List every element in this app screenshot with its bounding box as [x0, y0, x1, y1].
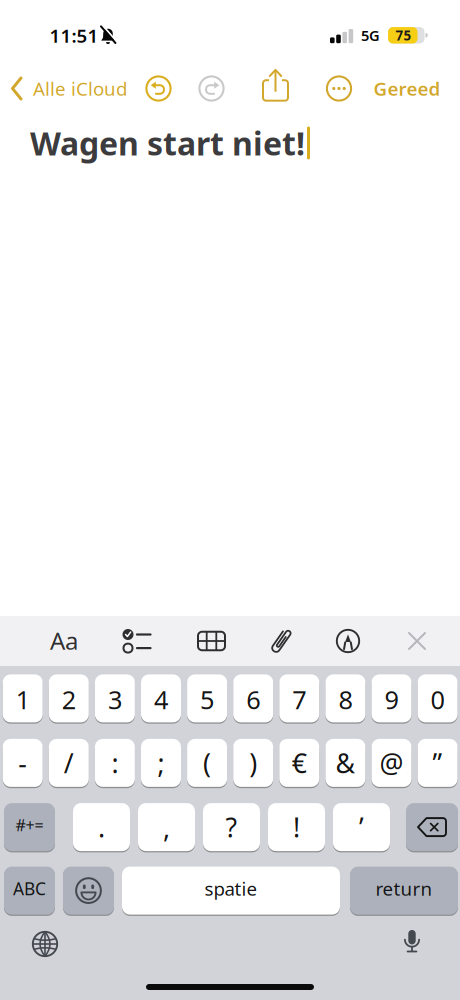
staticText: ;	[157, 745, 164, 781]
button[interactable]: 8	[325, 674, 365, 723]
button[interactable]: 9	[371, 674, 411, 723]
staticText: Aa	[50, 625, 78, 656]
button[interactable]: )	[233, 738, 273, 787]
button[interactable]: 7	[279, 674, 319, 723]
staticText: -	[18, 745, 27, 781]
button[interactable]: Share	[262, 68, 289, 103]
button[interactable]: #+=	[4, 802, 55, 852]
staticText: )	[249, 745, 257, 781]
button[interactable]: /	[49, 738, 89, 787]
staticText: #+=	[15, 814, 43, 836]
button[interactable]: ”	[418, 738, 458, 787]
staticText: 6	[246, 683, 260, 716]
staticText: ”	[433, 745, 443, 781]
staticText: @	[379, 745, 403, 781]
staticText: :	[111, 745, 118, 781]
staticText: !	[293, 809, 300, 845]
staticText: ’	[359, 809, 364, 845]
staticText: ,	[163, 809, 170, 845]
button[interactable]: Dismiss keyboard	[406, 630, 428, 652]
button[interactable]: ,	[138, 802, 195, 852]
staticText: 2	[62, 683, 76, 716]
button[interactable]: Dictation	[402, 929, 422, 956]
button[interactable]: .	[73, 802, 130, 852]
button[interactable]: 1	[3, 674, 43, 723]
button[interactable]: (	[187, 738, 227, 787]
button[interactable]: Next keyboard	[31, 930, 58, 957]
button[interactable]: Gereed	[373, 76, 440, 101]
staticText: .	[98, 809, 105, 845]
button[interactable]: -	[3, 738, 43, 787]
button[interactable]: 5	[187, 674, 227, 723]
staticText: Alle iCloud	[33, 76, 127, 101]
button[interactable]: ABC	[4, 866, 55, 915]
button[interactable]: Attachment	[275, 624, 286, 658]
staticText: (	[203, 745, 211, 781]
staticText: &	[335, 745, 355, 781]
button[interactable]: spatie	[122, 866, 340, 915]
staticText: 11:51	[49, 23, 98, 48]
button[interactable]: 0	[418, 674, 458, 723]
staticText: €	[292, 745, 307, 781]
staticText: 8	[338, 683, 352, 716]
staticText: ?	[225, 809, 237, 845]
button[interactable]: Delete	[406, 802, 458, 852]
button[interactable]: Format	[50, 625, 78, 656]
button[interactable]: Alle iCloud	[10, 76, 180, 101]
staticText: 0	[431, 683, 445, 716]
button[interactable]: 4	[141, 674, 181, 723]
staticText: 9	[384, 683, 398, 716]
button[interactable]: ;	[141, 738, 181, 787]
staticText: 75	[395, 26, 411, 44]
button[interactable]: Checklist	[122, 627, 152, 654]
button[interactable]: :	[95, 738, 135, 787]
button[interactable]: Emoji	[63, 866, 114, 915]
button[interactable]: 3	[95, 674, 135, 723]
staticText: 1	[16, 683, 30, 716]
button[interactable]: ?	[203, 802, 260, 852]
staticText: 7	[292, 683, 306, 716]
button[interactable]: !	[268, 802, 325, 852]
button[interactable]: Undo	[145, 75, 171, 101]
button[interactable]: return	[350, 866, 458, 915]
staticText: 5	[200, 683, 214, 716]
staticText: 5G	[361, 26, 380, 45]
staticText: 4	[154, 683, 168, 716]
button[interactable]: @	[371, 738, 411, 787]
staticText: ABC	[13, 877, 46, 900]
button[interactable]: More	[326, 75, 352, 101]
button[interactable]: Table	[196, 630, 226, 652]
staticText: Gereed	[373, 76, 440, 101]
staticText: Wagen start niet!	[30, 122, 305, 164]
button[interactable]: Markup	[336, 629, 360, 653]
staticText: 3	[108, 683, 122, 716]
staticText: /	[64, 745, 74, 781]
staticText: spatie	[204, 876, 257, 901]
button[interactable]: €	[279, 738, 319, 787]
button[interactable]: &	[325, 738, 365, 787]
staticText: return	[375, 876, 432, 901]
button[interactable]: 6	[233, 674, 273, 723]
button[interactable]: Redo	[198, 75, 224, 101]
button[interactable]: ’	[333, 802, 390, 852]
button[interactable]: 2	[49, 674, 89, 723]
